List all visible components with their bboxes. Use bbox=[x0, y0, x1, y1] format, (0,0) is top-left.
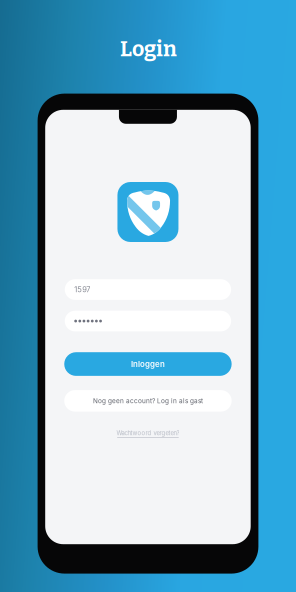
staticText: Wachtwoord vergeten? bbox=[116, 430, 179, 437]
button[interactable]: Nog geen account? Log in als gast bbox=[64, 390, 232, 412]
staticText: Inloggen bbox=[131, 359, 165, 369]
staticText: 1597 bbox=[74, 285, 90, 294]
button[interactable]: Inloggen bbox=[64, 352, 232, 376]
button[interactable]: Wachtwoord vergeten? bbox=[116, 430, 179, 438]
staticText: Login bbox=[120, 36, 177, 62]
staticText: Nog geen account? Log in als gast bbox=[93, 397, 203, 405]
